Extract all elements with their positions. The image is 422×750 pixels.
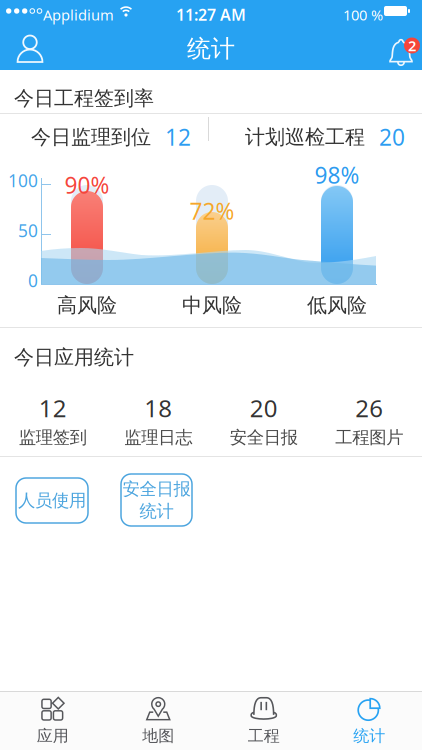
staticText: 中风险	[182, 293, 242, 318]
staticText: 工程	[248, 726, 280, 746]
staticText: 2	[408, 36, 416, 55]
button[interactable]: 人员使用	[16, 478, 88, 523]
staticText: 20	[379, 122, 405, 152]
staticText: 今日应用统计	[14, 345, 134, 370]
staticText: 地图	[142, 726, 174, 746]
staticText: 监理日志	[124, 427, 192, 448]
button[interactable]: 应用	[0, 695, 105, 747]
button[interactable]: Notifications	[378, 27, 416, 67]
staticText: 统计	[139, 500, 173, 522]
staticText: 计划巡检工程	[245, 125, 365, 149]
staticText: 90%	[64, 170, 109, 200]
staticText: 今日工程签到率	[14, 86, 154, 111]
staticText: 安全日报	[230, 427, 298, 448]
staticText: 今日监理到位	[31, 125, 151, 149]
staticText: 低风险	[307, 293, 367, 318]
button[interactable]: 统计	[316, 695, 422, 747]
staticText: 安全日报	[122, 478, 190, 499]
staticText: 100 %	[343, 5, 383, 24]
staticText: 高风险	[57, 293, 117, 318]
button[interactable]: Profile	[7, 25, 53, 72]
staticText: 20	[250, 392, 278, 424]
staticText: 人员使用	[18, 490, 86, 511]
staticText: 50	[18, 219, 38, 242]
staticText: 统计	[187, 34, 235, 63]
staticText: 统计	[353, 726, 385, 746]
staticText: 0	[28, 269, 38, 292]
staticText: 98%	[314, 160, 359, 190]
staticText: 监理签到	[19, 427, 87, 448]
staticText: 12	[165, 122, 191, 152]
staticText: Applidium	[43, 5, 114, 24]
staticText: 18	[144, 392, 172, 424]
button[interactable]: 安全日报	[121, 474, 192, 526]
staticText: 12	[39, 392, 67, 424]
staticText: 100	[8, 169, 38, 192]
staticText: 应用	[37, 726, 69, 746]
staticText: 工程图片	[335, 427, 403, 448]
staticText: 26	[355, 392, 383, 424]
button[interactable]: 地图	[105, 695, 211, 747]
button[interactable]: 工程	[211, 695, 316, 747]
staticText: 11:27 AM	[176, 4, 246, 25]
staticText: 72%	[189, 196, 234, 226]
